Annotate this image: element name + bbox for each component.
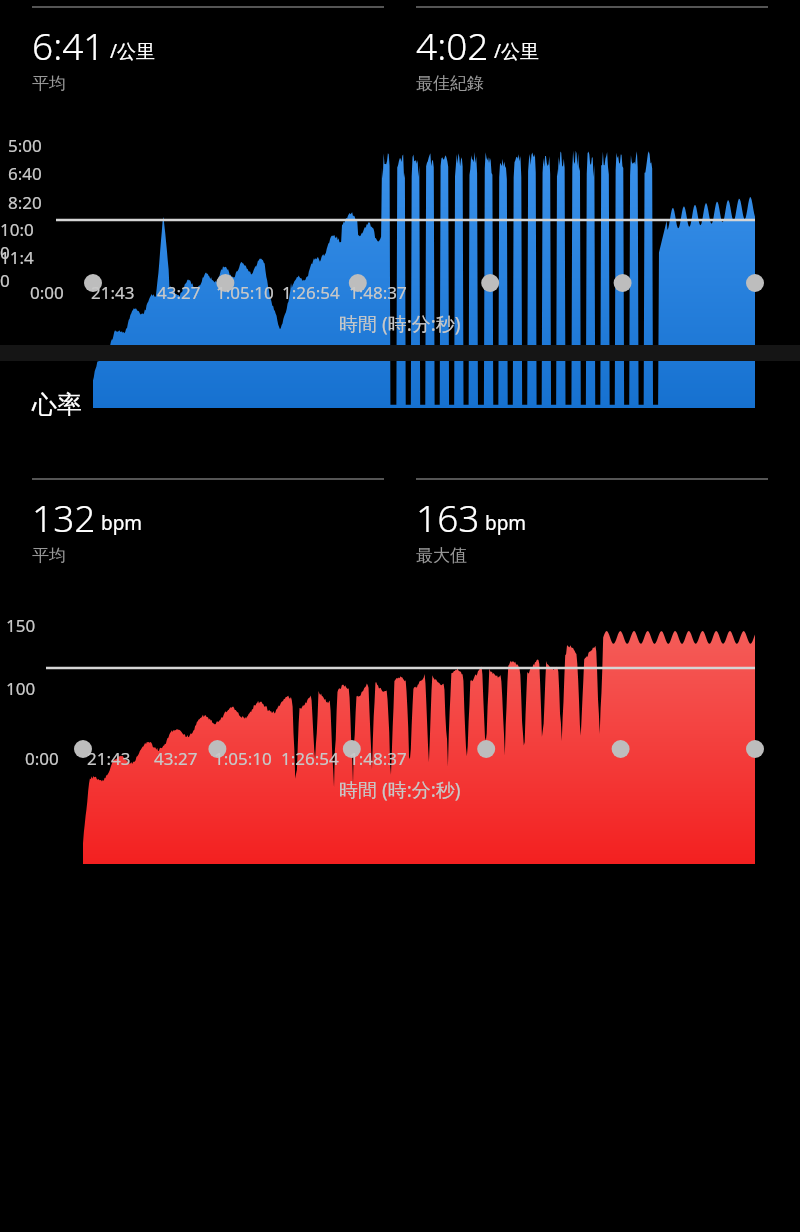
staticText: bpm bbox=[485, 510, 527, 536]
staticText: 5:00 bbox=[8, 134, 42, 157]
staticText: 平均 bbox=[32, 545, 66, 566]
staticText: 1:26:54 bbox=[281, 747, 339, 770]
staticText: bpm bbox=[101, 510, 143, 536]
button[interactable]: 4:02 bbox=[416, 6, 768, 94]
staticText: 6:40 bbox=[8, 162, 42, 185]
staticText: 163 bbox=[416, 492, 480, 542]
staticText: 43:27 bbox=[154, 747, 198, 770]
staticText: 150 bbox=[6, 614, 36, 637]
staticText: 1:48:37 bbox=[349, 281, 407, 304]
staticText: 1:05:10 bbox=[216, 281, 274, 304]
staticText: /公里 bbox=[494, 38, 540, 64]
staticText: 43:27 bbox=[157, 281, 201, 304]
staticText: 0:00 bbox=[30, 281, 64, 304]
staticText: 最大值 bbox=[416, 545, 467, 566]
button[interactable]: 心率 bbox=[32, 389, 82, 420]
staticText: 11:40 bbox=[0, 246, 42, 292]
staticText: 132 bbox=[32, 492, 96, 542]
staticText: 1:05:10 bbox=[214, 747, 272, 770]
staticText: /公里 bbox=[110, 38, 156, 64]
staticText: 時間 (時:分:秒) bbox=[339, 311, 461, 337]
button[interactable]: 6:41 bbox=[32, 6, 384, 94]
button[interactable]: 163 bbox=[416, 478, 768, 566]
staticText: 平均 bbox=[32, 73, 66, 94]
staticText: 最佳紀錄 bbox=[416, 73, 484, 94]
staticText: 100 bbox=[6, 677, 36, 700]
staticText: 21:43 bbox=[87, 747, 131, 770]
staticText: 心率 bbox=[32, 389, 82, 420]
staticText: 6:41 bbox=[32, 20, 105, 70]
staticText: 8:20 bbox=[8, 191, 42, 214]
staticText: 1:26:54 bbox=[282, 281, 340, 304]
staticText: 1:48:37 bbox=[349, 747, 407, 770]
staticText: 時間 (時:分:秒) bbox=[339, 777, 461, 803]
staticText: 10:00 bbox=[0, 218, 42, 264]
staticText: 0:00 bbox=[25, 747, 59, 770]
button[interactable]: 132 bbox=[32, 478, 384, 566]
staticText: 21:43 bbox=[91, 281, 135, 304]
staticText: 4:02 bbox=[416, 20, 489, 70]
